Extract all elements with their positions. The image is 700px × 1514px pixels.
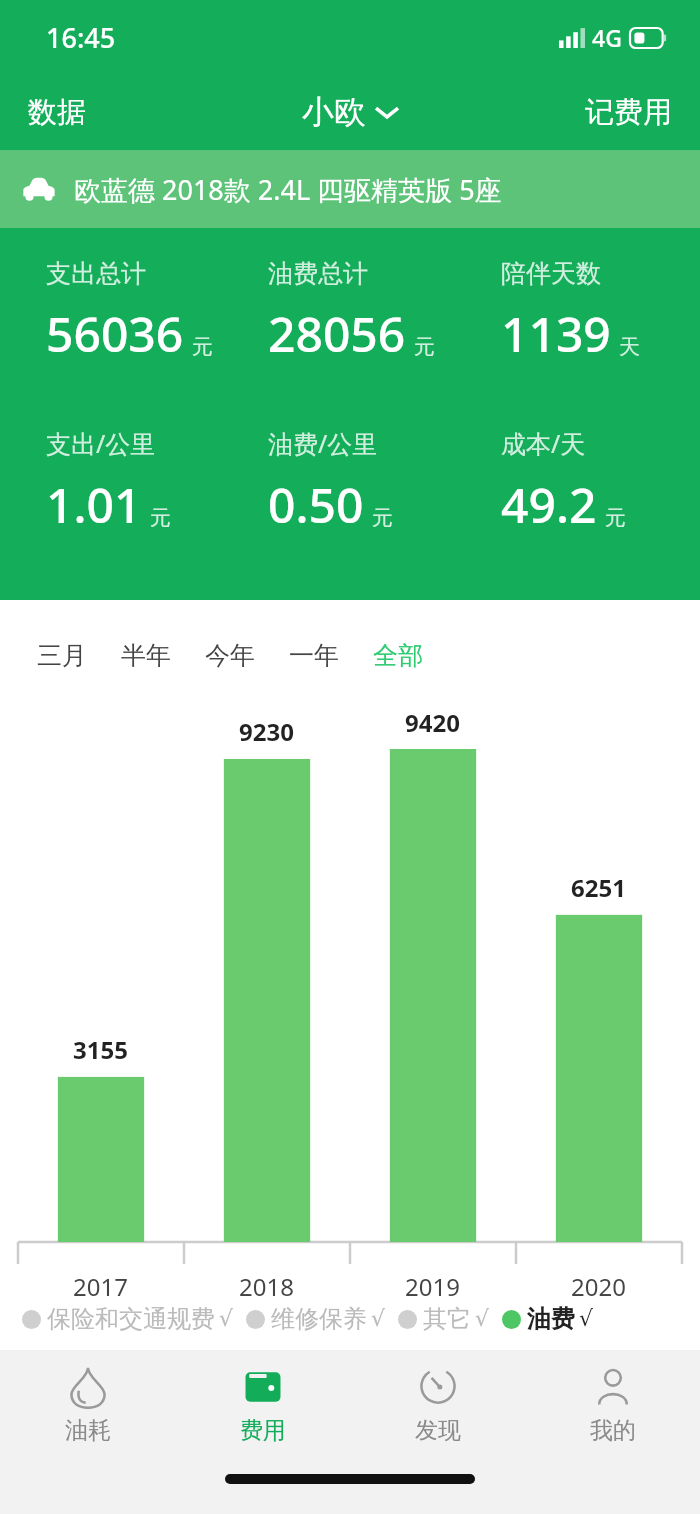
- button[interactable]: 半年: [104, 632, 188, 679]
- staticText: 0.50: [268, 472, 364, 537]
- staticText: 发现: [415, 1416, 461, 1445]
- staticText: 元: [605, 505, 626, 531]
- button[interactable]: 油耗: [0, 1350, 175, 1458]
- staticText: 元: [150, 505, 171, 531]
- staticText: 半年: [121, 640, 171, 671]
- staticText: 2017: [73, 1270, 128, 1303]
- staticText: 支出/公里: [46, 426, 156, 460]
- button[interactable]: 今年: [188, 632, 272, 679]
- staticText: 2019: [405, 1270, 460, 1303]
- button[interactable]: 记费用: [557, 84, 700, 141]
- staticText: 一年: [289, 640, 339, 671]
- staticText: 今年: [205, 640, 255, 671]
- button[interactable]: 费用: [175, 1350, 350, 1458]
- staticText: 小欧: [302, 92, 366, 132]
- staticText: √: [579, 1306, 594, 1332]
- staticText: 其它: [423, 1304, 471, 1334]
- button[interactable]: 三月: [20, 632, 104, 679]
- staticText: 9420: [405, 706, 460, 739]
- staticText: 三月: [37, 640, 87, 671]
- button[interactable]: 油费: [502, 1300, 594, 1338]
- staticText: 2020: [571, 1270, 626, 1303]
- button[interactable]: 其它: [398, 1300, 490, 1338]
- button[interactable]: 保险和交通规费: [22, 1300, 234, 1338]
- staticText: 油费: [527, 1304, 575, 1334]
- staticText: 元: [414, 334, 435, 360]
- button[interactable]: 数据: [0, 84, 114, 141]
- staticText: 天: [619, 334, 640, 360]
- staticText: 49.2: [501, 472, 597, 537]
- button[interactable]: 全部: [356, 632, 440, 679]
- staticText: 3155: [73, 1033, 128, 1066]
- staticText: 陪伴天数: [501, 258, 601, 289]
- button[interactable]: 维修保养: [246, 1300, 386, 1338]
- staticText: 支出总计: [46, 258, 146, 289]
- staticText: 1.01: [46, 472, 142, 537]
- staticText: 油费/公里: [268, 426, 378, 460]
- staticText: 油耗: [65, 1416, 111, 1445]
- staticText: 数据: [28, 94, 86, 131]
- button[interactable]: 我的: [525, 1350, 700, 1458]
- staticText: 元: [372, 505, 393, 531]
- staticText: 保险和交通规费: [47, 1304, 215, 1334]
- staticText: 全部: [373, 640, 423, 671]
- button[interactable]: 欧蓝德 2018款 2.4L 四驱精英版 5座: [0, 150, 700, 228]
- button[interactable]: 一年: [272, 632, 356, 679]
- staticText: 成本/天: [501, 426, 586, 460]
- staticText: 元: [192, 334, 213, 360]
- staticText: √: [219, 1306, 234, 1332]
- staticText: √: [475, 1306, 490, 1332]
- button[interactable]: 小欧: [286, 84, 414, 140]
- staticText: 56036: [46, 301, 184, 366]
- staticText: √: [371, 1306, 386, 1332]
- staticText: 我的: [590, 1416, 636, 1445]
- staticText: 2018: [239, 1270, 294, 1303]
- staticText: 6251: [571, 871, 626, 904]
- staticText: 28056: [268, 301, 406, 366]
- staticText: 记费用: [585, 94, 672, 131]
- staticText: 油费总计: [268, 258, 368, 289]
- staticText: 4G: [592, 22, 622, 53]
- staticText: 9230: [239, 715, 294, 748]
- staticText: 16:45: [46, 19, 116, 56]
- staticText: 1139: [501, 301, 611, 366]
- staticText: 欧蓝德 2018款 2.4L 四驱精英版 5座: [74, 171, 502, 208]
- staticText: 费用: [240, 1416, 286, 1445]
- staticText: 维修保养: [271, 1304, 367, 1334]
- button[interactable]: 发现: [350, 1350, 525, 1458]
